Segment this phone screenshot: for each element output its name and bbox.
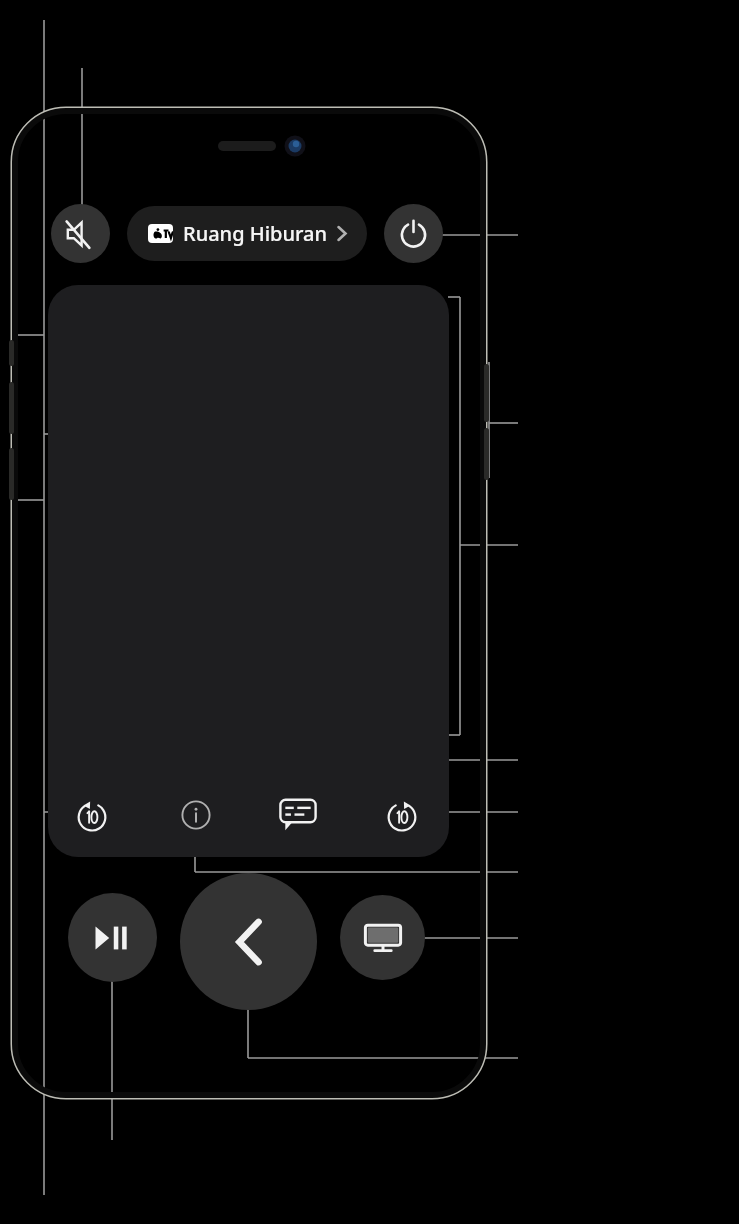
button[interactable]: Power	[384, 204, 443, 263]
button[interactable]: Skip back 10 seconds	[68, 791, 116, 839]
button[interactable]: TV app	[340, 895, 425, 980]
button[interactable]: Ruang Hiburan	[127, 206, 367, 261]
button[interactable]: Play or pause	[68, 893, 157, 982]
staticText: Ruang Hiburan	[183, 220, 328, 247]
button[interactable]: Info	[172, 791, 220, 839]
button[interactable]: Mute	[51, 204, 110, 263]
button[interactable]: Back	[180, 873, 317, 1010]
button[interactable]: Touch surface	[48, 285, 449, 857]
button[interactable]: Skip forward 10 seconds	[378, 791, 426, 839]
button[interactable]: Subtitles	[274, 791, 322, 839]
